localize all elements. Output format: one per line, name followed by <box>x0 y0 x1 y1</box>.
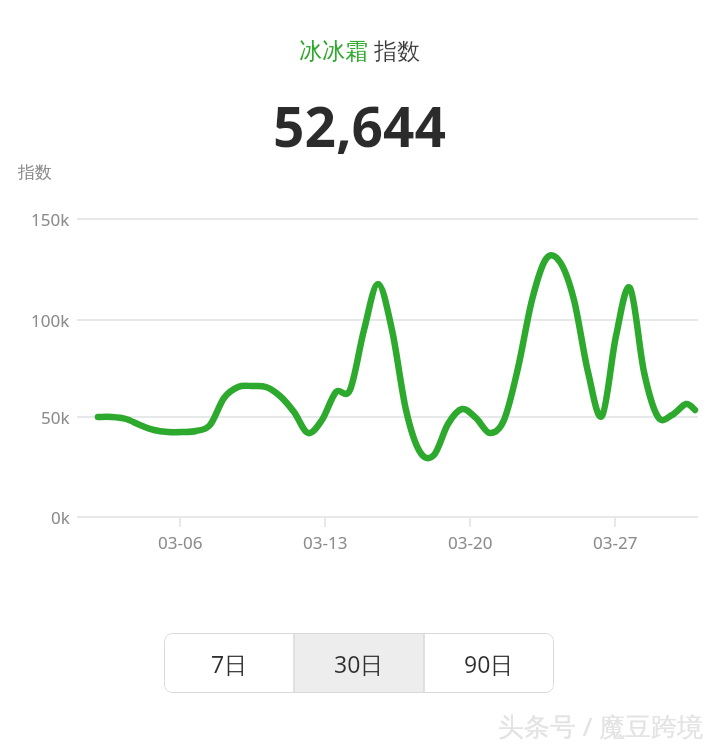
staticText: 100k <box>31 309 70 332</box>
staticText: 150k <box>31 208 70 231</box>
staticText: 7日 <box>211 648 248 679</box>
staticText: 30日 <box>334 648 384 679</box>
staticText: 0k <box>51 506 70 529</box>
staticText: 03-20 <box>448 531 493 554</box>
staticText: 90日 <box>464 648 514 679</box>
staticText: 50k <box>41 406 70 429</box>
staticText: 指数 <box>18 162 52 183</box>
staticText: 03-13 <box>303 531 348 554</box>
staticText: 03-06 <box>158 531 203 554</box>
staticText: 冰冰霜 指数 <box>299 34 420 65</box>
staticText: 03-27 <box>593 531 638 554</box>
button[interactable]: 7日 <box>164 633 294 693</box>
staticText: 头条号 / 魔豆跨境 <box>498 708 704 744</box>
button[interactable]: 30日 <box>294 633 424 693</box>
staticText: 52,644 <box>273 88 446 163</box>
button[interactable]: 90日 <box>424 633 554 693</box>
